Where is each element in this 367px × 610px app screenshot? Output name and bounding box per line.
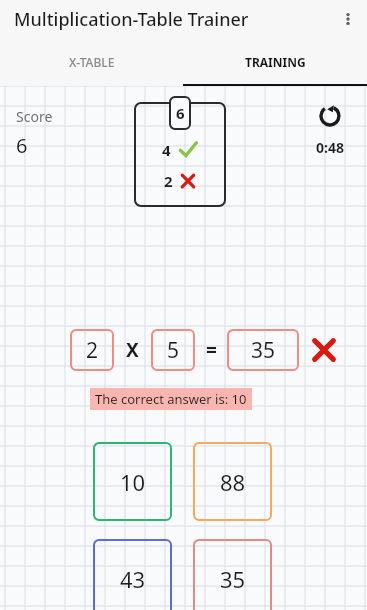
button[interactable]: 2 (70, 329, 114, 371)
button[interactable]: Restart timer (300, 102, 360, 157)
staticText: 43 (120, 564, 146, 594)
staticText: X-TABLE (69, 54, 115, 70)
staticText: 2 (164, 171, 173, 191)
staticText: 0:48 (316, 138, 344, 157)
staticText: Multiplication-Table Trainer (14, 7, 249, 32)
button[interactable]: 43 (93, 539, 172, 610)
button[interactable]: 10 (93, 442, 172, 521)
staticText: X (126, 337, 139, 363)
staticText: 6 (176, 103, 185, 123)
button[interactable]: 35 (227, 329, 299, 371)
button[interactable]: More options (329, 0, 367, 38)
button[interactable]: 88 (193, 442, 272, 521)
button[interactable]: 5 (151, 329, 195, 371)
staticText: The correct answer is: 10 (95, 390, 247, 408)
staticText: = (206, 337, 217, 363)
staticText: 2 (86, 336, 99, 365)
staticText: 6 (16, 132, 28, 159)
staticText: 35 (251, 336, 276, 365)
staticText: 35 (220, 564, 246, 594)
button[interactable]: TRAINING (183, 38, 367, 86)
staticText: 4 (162, 140, 171, 160)
staticText: TRAINING (245, 54, 306, 70)
button[interactable]: 35 (193, 539, 272, 610)
staticText: 88 (220, 467, 246, 497)
staticText: Score (16, 107, 53, 126)
staticText: 5 (167, 336, 180, 365)
staticText: 10 (120, 467, 146, 497)
button[interactable]: X-TABLE (0, 38, 183, 86)
